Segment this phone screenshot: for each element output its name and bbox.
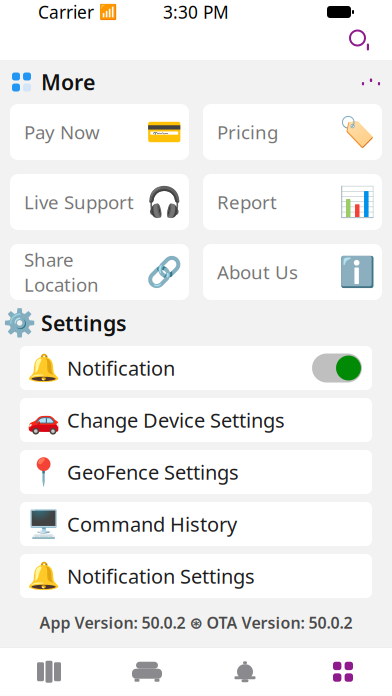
button[interactable]: 🔔	[20, 346, 372, 390]
staticText: Pay Now	[24, 120, 100, 144]
staticText: Report	[217, 190, 277, 214]
staticText: Change Device Settings	[67, 407, 285, 433]
staticText: Live Support	[24, 190, 134, 214]
staticText: 💳	[146, 115, 183, 149]
staticText: 🔔	[27, 353, 60, 383]
staticText: ℹ️	[339, 255, 376, 289]
button[interactable]: Search	[341, 25, 382, 58]
staticText: 3:30 PM	[163, 0, 229, 23]
staticText: Carrier	[38, 0, 94, 23]
staticText: 📍	[27, 457, 60, 487]
staticText: About Us	[217, 260, 298, 284]
button[interactable]: Pricing	[203, 104, 382, 160]
button[interactable]: Vehicles	[98, 648, 196, 696]
staticText: Notification Settings	[67, 563, 255, 589]
button[interactable]: 🖥️	[20, 502, 372, 546]
staticText: Share Location	[24, 247, 99, 297]
button[interactable]: More	[294, 648, 392, 696]
button[interactable]: Live Support	[10, 174, 189, 230]
button[interactable]: Report	[203, 174, 382, 230]
staticText: 🔗	[146, 255, 183, 289]
button[interactable]: Pay Now	[10, 104, 189, 160]
staticText: 🚗	[27, 405, 60, 435]
button[interactable]: 🚗	[20, 398, 372, 442]
button[interactable]: 📍	[20, 450, 372, 494]
staticText: 🖥️	[27, 509, 60, 539]
button[interactable]: More	[0, 60, 392, 104]
staticText: 📶	[99, 4, 117, 20]
staticText: ⚙️	[3, 308, 36, 338]
staticText: 🏷️	[339, 115, 376, 149]
staticText: 🎧	[146, 185, 183, 219]
staticText: GeoFence Settings	[67, 459, 239, 485]
staticText: Settings	[41, 309, 127, 337]
staticText: Command History	[67, 511, 237, 537]
button[interactable]: About Us	[203, 244, 382, 300]
button[interactable]: Map	[0, 648, 98, 696]
staticText: 🔔	[27, 561, 60, 591]
button[interactable]: Alerts	[196, 648, 294, 696]
staticText: More	[41, 68, 95, 96]
staticText: Pricing	[217, 120, 278, 144]
button[interactable]: Share Location	[10, 244, 189, 300]
staticText: Notification	[67, 355, 175, 381]
staticText: 📊	[339, 185, 376, 219]
button[interactable]: 🔔	[20, 554, 372, 598]
staticText: App Version: 50.0.2 ⊛ OTA Version: 50.0.…	[39, 612, 352, 633]
